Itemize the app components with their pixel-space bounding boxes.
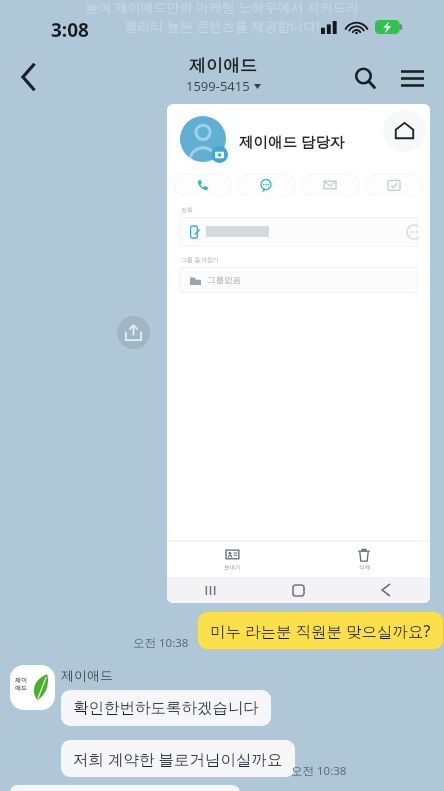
button[interactable]: 삭제 <box>298 542 430 577</box>
button[interactable]: 제이애드 담당자 <box>167 104 430 603</box>
staticText: 그룹없음 <box>207 275 241 286</box>
staticText: 애드 <box>15 684 27 692</box>
staticText: 3:08 <box>51 17 89 43</box>
staticText: 제이애드 <box>189 55 257 76</box>
button[interactable]: Search <box>343 56 387 100</box>
staticText: 제이 <box>15 676 27 684</box>
staticText: 보내기 <box>224 564 241 571</box>
staticText: 전화 <box>181 206 193 214</box>
staticText: 제이애드 <box>61 667 113 683</box>
staticText: 1599-5415 <box>186 77 250 95</box>
staticText: 제이애드 담당자 <box>239 131 345 151</box>
button[interactable] <box>173 174 232 196</box>
staticText: 확인한번하도록하겠습니다 <box>73 698 259 718</box>
button[interactable]: Home <box>383 109 426 152</box>
button[interactable]: 미누 라는분 직원분 맞으실까요? <box>198 612 443 649</box>
button[interactable]: 그룹없음 <box>179 267 418 293</box>
button[interactable]: 제이애드 프로필 <box>10 665 55 710</box>
button[interactable] <box>300 174 360 196</box>
staticText: 높여 제이애드만의 마케팅 노하우에서 지켜드리 <box>85 0 359 16</box>
button[interactable]: 보내기 <box>167 542 298 577</box>
button[interactable]: 저희 계약한 블로거님이실까요 <box>61 740 295 777</box>
button[interactable]: Share <box>117 316 150 349</box>
button[interactable]: Home <box>254 577 342 603</box>
staticText: 퀄리티 높은 콘텐츠를 제공합니다! <box>124 17 320 35</box>
button[interactable] <box>236 174 296 196</box>
button[interactable]: 확인한번하도록하겠습니다 <box>61 690 271 726</box>
staticText: 삭제 <box>359 564 370 571</box>
button[interactable]: Back <box>6 54 52 100</box>
button[interactable]: Recents <box>167 577 254 603</box>
staticText: 저희 계약한 블로거님이실까요 <box>73 748 283 769</box>
button[interactable] <box>179 217 418 247</box>
staticText: 오전 10:38 <box>291 763 347 779</box>
button[interactable] <box>364 174 424 196</box>
button[interactable]: Menu <box>390 56 434 100</box>
staticText: 오전 10:38 <box>133 635 189 651</box>
staticText: 미누 라는분 직원분 맞으실까요? <box>210 620 431 641</box>
button[interactable]: Back <box>342 577 430 603</box>
staticText: 그룹 즐겨찾기 <box>181 256 219 264</box>
